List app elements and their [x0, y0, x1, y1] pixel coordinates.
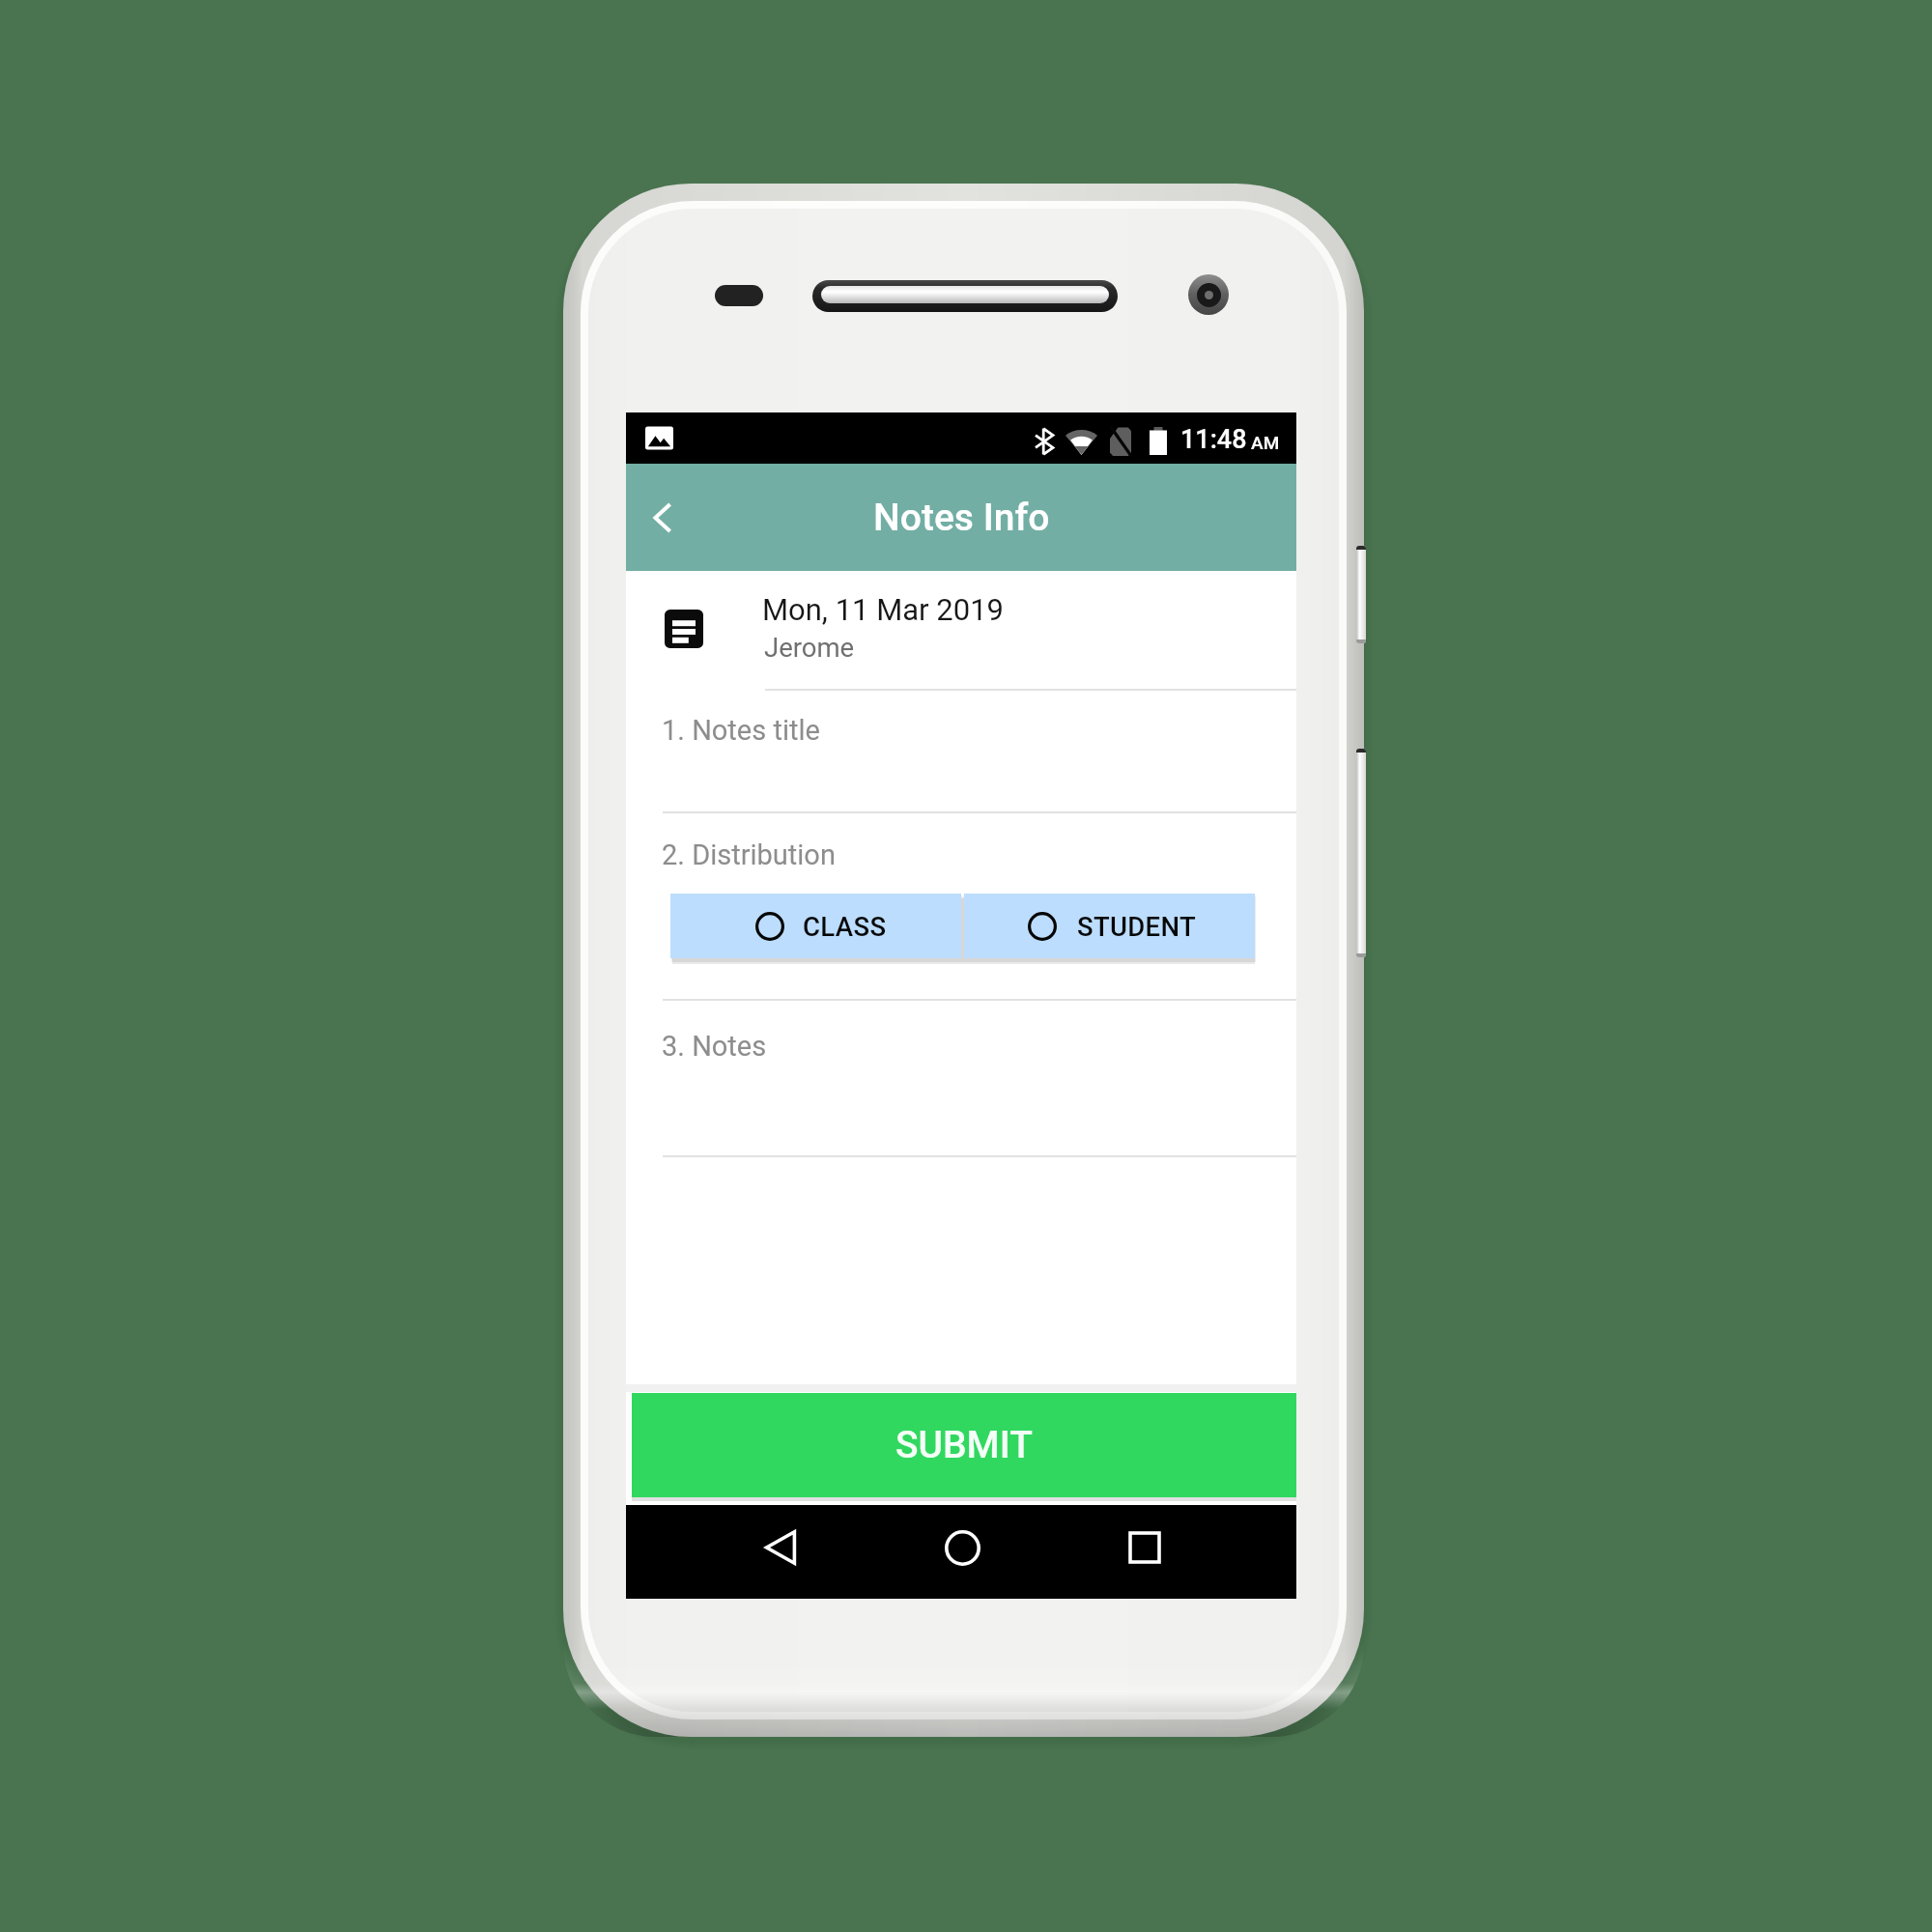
button[interactable]: Back [744, 1516, 817, 1589]
button[interactable]: SUBMIT [632, 1393, 1296, 1497]
staticText: 11:48 [1180, 424, 1247, 455]
staticText: 1. Notes title [662, 714, 820, 747]
staticText: Jerome [764, 632, 855, 663]
staticText: CLASS [803, 911, 887, 942]
staticText: 3. Notes [662, 1030, 767, 1063]
staticText: AM [1251, 432, 1280, 453]
button[interactable]: STUDENT [964, 894, 1255, 958]
staticText: STUDENT [1077, 911, 1197, 942]
staticText: Mon, 11 Mar 2019 [762, 592, 1004, 627]
staticText: Notes Info [873, 496, 1050, 540]
button[interactable]: Recent apps [1108, 1516, 1181, 1589]
staticText: SUBMIT [895, 1423, 1033, 1467]
button[interactable]: CLASS [670, 894, 961, 958]
button[interactable]: Home [923, 1516, 996, 1589]
staticText: 2. Distribution [662, 838, 836, 871]
button[interactable]: Back [630, 485, 696, 551]
